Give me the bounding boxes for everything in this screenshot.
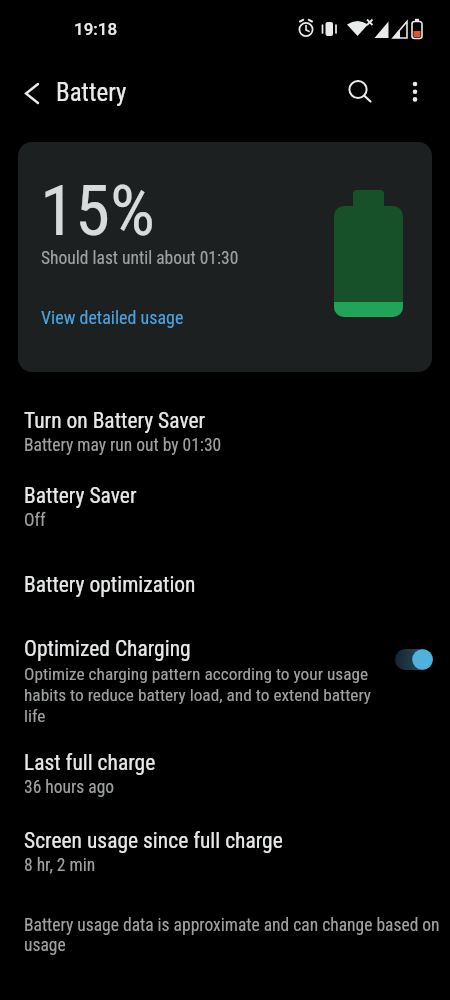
staticText: 15% [40, 169, 156, 252]
staticText: Battery Saver [24, 483, 137, 508]
staticText: 8 hr, 2 min [24, 855, 96, 876]
staticText: Optimize charging pattern according to y… [24, 664, 372, 726]
staticText: Off [24, 510, 46, 531]
staticText: Last full charge [24, 750, 156, 775]
button[interactable]: Battery optimization [0, 560, 450, 616]
staticText: Battery optimization [24, 572, 196, 597]
button[interactable]: Optimized Charging [0, 622, 450, 730]
button[interactable] [397, 72, 435, 110]
staticText: Optimized Charging [24, 636, 191, 661]
staticText: Battery usage data is approximate and ca… [24, 915, 440, 955]
button[interactable]: View detailed usage [31, 297, 174, 318]
staticText: Battery [56, 78, 127, 107]
staticText: Turn on Battery Saver [24, 408, 206, 433]
button[interactable] [10, 74, 50, 112]
staticText: Screen usage since full charge [24, 828, 283, 853]
button[interactable]: Screen usage since full charge [0, 816, 450, 888]
staticText: Should last until about 01:30 [41, 248, 239, 269]
staticText: View detailed usage [41, 307, 184, 328]
button[interactable]: Last full charge [0, 738, 450, 810]
button[interactable] [340, 72, 378, 110]
staticText: Battery may run out by 01:30 [24, 435, 222, 456]
button[interactable]: Turn on Battery Saver [0, 396, 450, 468]
staticText: 36 hours ago [24, 777, 115, 798]
staticText: 19:18 [74, 19, 118, 39]
button[interactable]: Battery Saver [0, 471, 450, 543]
